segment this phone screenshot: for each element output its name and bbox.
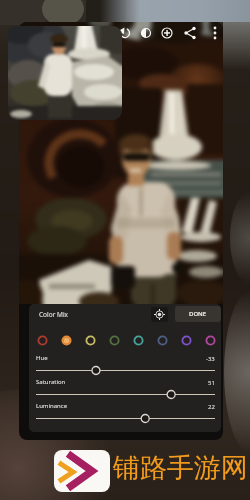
button[interactable] (204, 334, 217, 347)
button[interactable] (36, 365, 215, 376)
staticText: Luminance (36, 402, 68, 410)
staticText: Saturation (36, 378, 66, 386)
button[interactable] (151, 307, 168, 322)
button[interactable] (36, 334, 49, 347)
button[interactable] (84, 334, 97, 347)
button[interactable] (19, 22, 223, 304)
button[interactable] (36, 389, 215, 400)
button[interactable] (8, 26, 122, 120)
staticText: -33 (206, 355, 215, 363)
button[interactable] (60, 334, 73, 347)
button[interactable] (54, 450, 110, 492)
staticText: 51 (208, 379, 215, 387)
button[interactable]: 铺路手游网 (113, 451, 248, 485)
staticText: DONE (189, 310, 207, 318)
staticText: 22 (208, 403, 215, 411)
button[interactable] (36, 413, 215, 424)
staticText: Color Mix (39, 310, 69, 319)
button[interactable] (132, 334, 145, 347)
button[interactable] (156, 334, 169, 347)
staticText: Hue (36, 354, 48, 362)
button[interactable]: DONE (175, 306, 221, 322)
button[interactable] (108, 334, 121, 347)
button[interactable] (180, 334, 193, 347)
